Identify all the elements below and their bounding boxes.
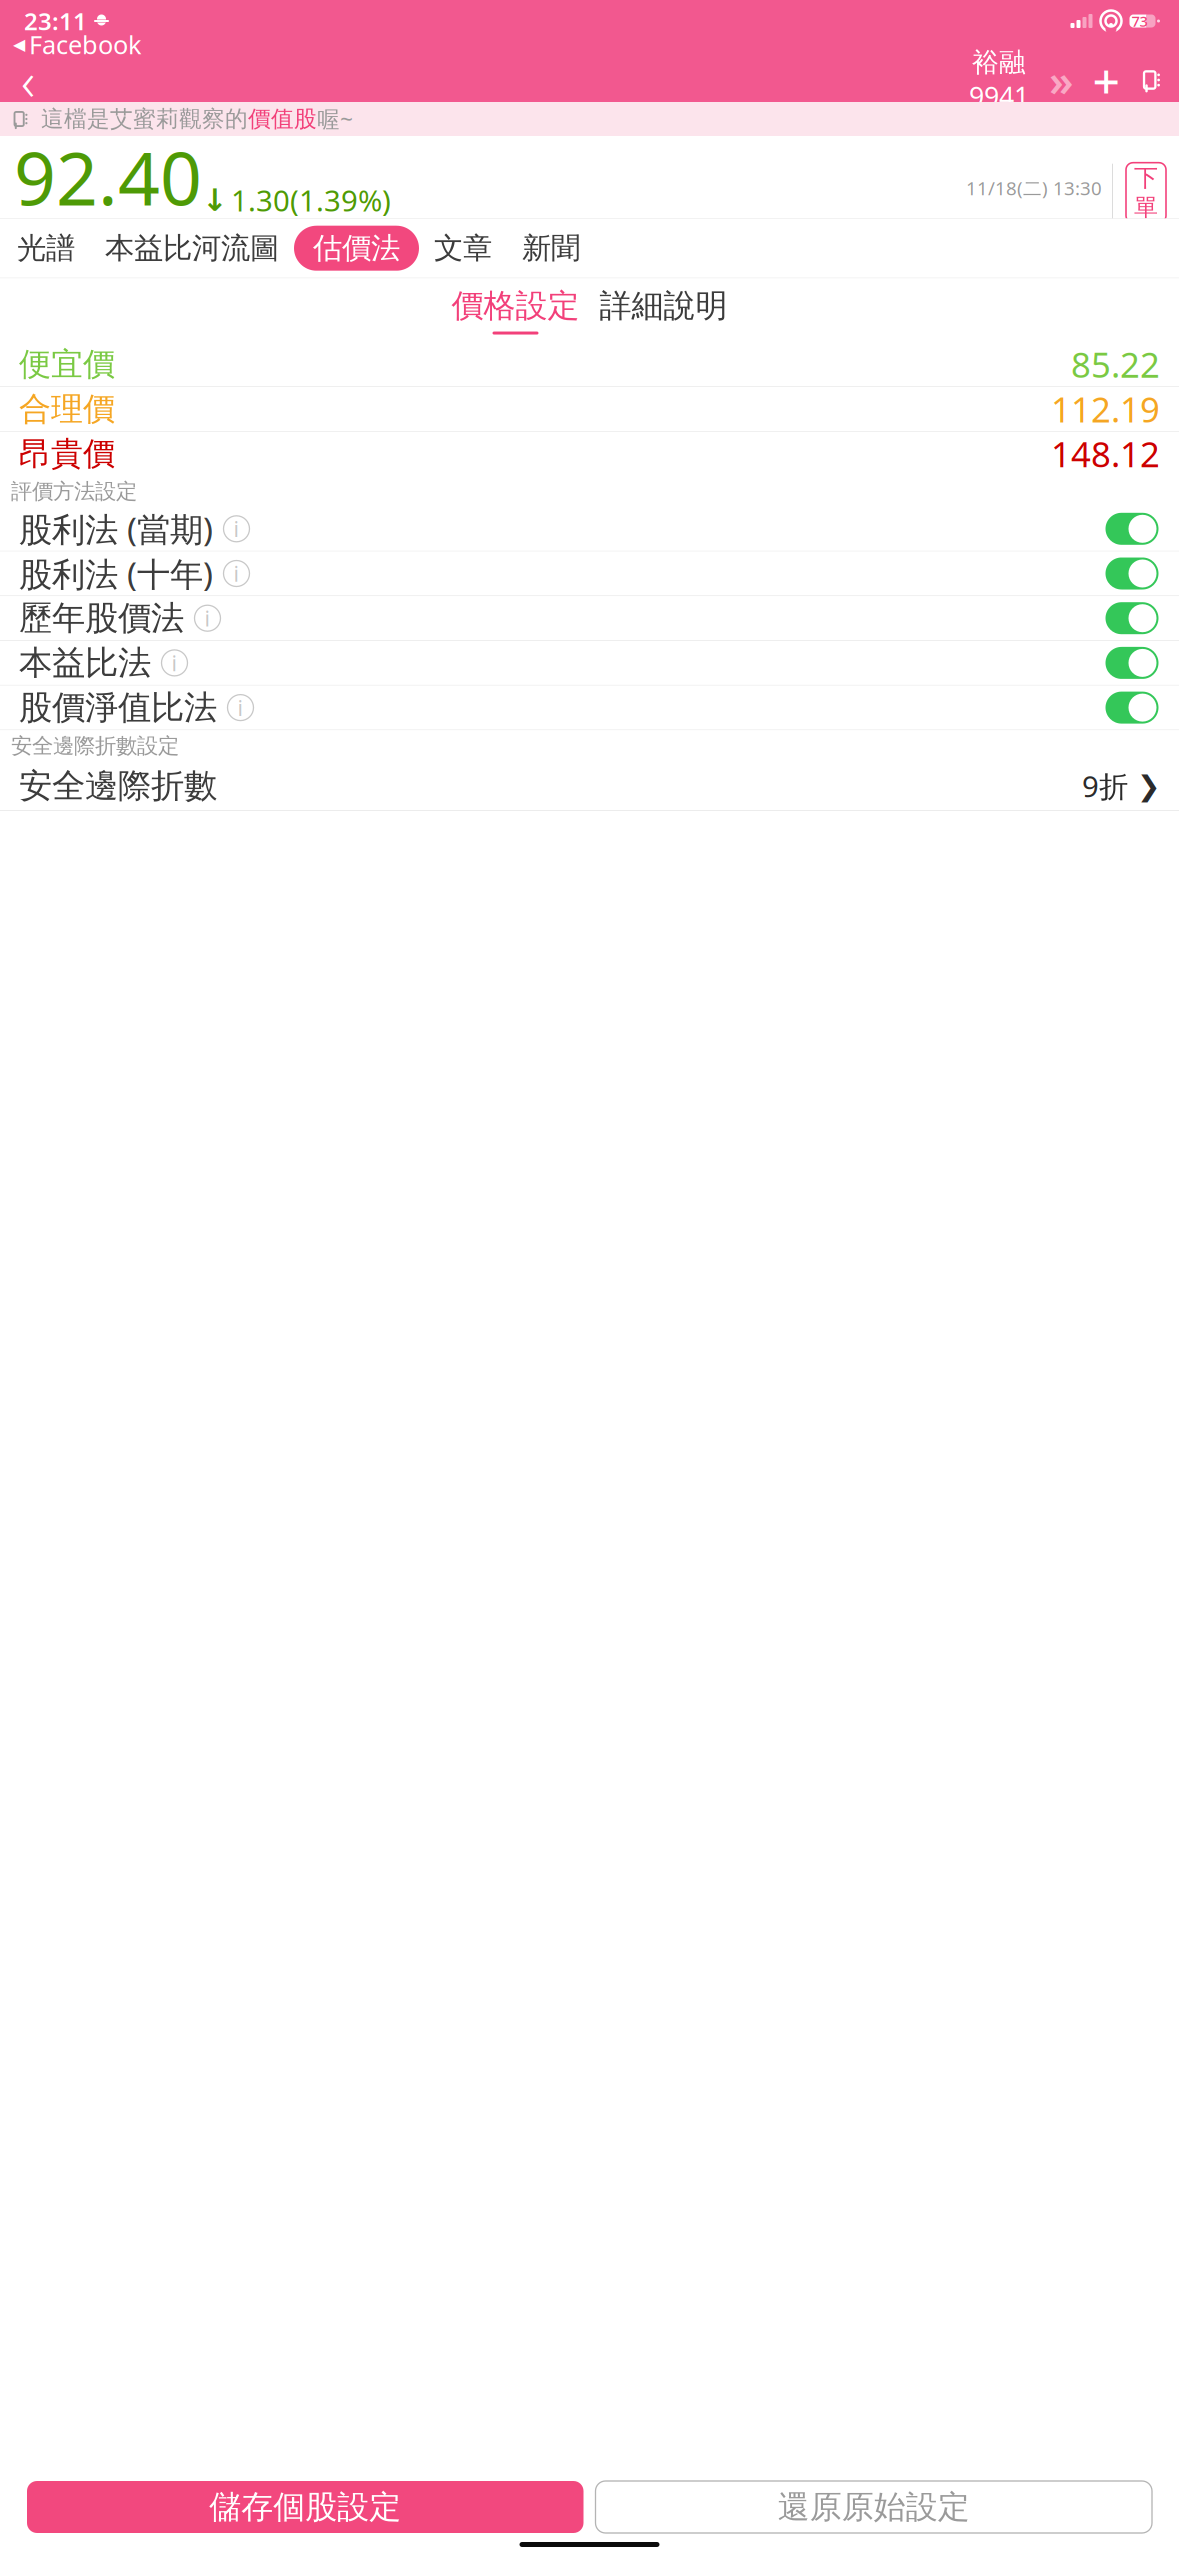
button[interactable]: Info about 本益比法 bbox=[161, 649, 188, 676]
button[interactable]: 便宜價 bbox=[0, 342, 1179, 386]
staticText: 23:11 bbox=[24, 5, 87, 37]
button[interactable]: Announcements bbox=[1129, 58, 1175, 102]
staticText: 9941 bbox=[969, 79, 1029, 114]
staticText: 歷年股價法 bbox=[19, 598, 184, 639]
staticText: 112.19 bbox=[1051, 386, 1160, 432]
button[interactable]: 價格設定 bbox=[445, 283, 585, 337]
staticText: 價值股 bbox=[248, 105, 317, 133]
staticText: i bbox=[233, 515, 239, 543]
staticText: 這檔是艾蜜莉觀察的 bbox=[41, 105, 248, 133]
staticText: 合理價 bbox=[19, 389, 115, 429]
button[interactable]: 新聞 bbox=[507, 226, 595, 271]
button[interactable]: 本益比法, on bbox=[1104, 641, 1160, 685]
button[interactable]: 股利法 (十年), on bbox=[1104, 551, 1160, 595]
button[interactable]: 股利法 (當期), on bbox=[1104, 507, 1160, 551]
staticText: 詳細說明 bbox=[599, 286, 727, 325]
button[interactable]: 光譜 bbox=[2, 226, 90, 271]
staticText: 148.12 bbox=[1051, 431, 1160, 477]
staticText: 1.30(1.39%) bbox=[231, 181, 391, 220]
staticText: ◀ bbox=[13, 35, 25, 54]
button[interactable]: Info about 歷年股價法 bbox=[194, 605, 221, 632]
staticText: 92.40 bbox=[14, 128, 202, 226]
staticText: 下 bbox=[1134, 163, 1158, 193]
staticText: 還原原始設定 bbox=[778, 2487, 970, 2527]
staticText: 安全邊際折數 bbox=[19, 765, 217, 806]
staticText: 文章 bbox=[434, 230, 492, 266]
button[interactable]: 合理價 bbox=[0, 387, 1179, 431]
staticText: ↓ bbox=[202, 183, 228, 218]
staticText: 安全邊際折數設定 bbox=[11, 733, 179, 759]
staticText: 本益比河流圖 bbox=[105, 230, 279, 266]
staticText: 73 bbox=[1131, 11, 1147, 31]
staticText: 價格設定 bbox=[451, 286, 579, 325]
staticText: 85.22 bbox=[1071, 341, 1160, 387]
staticText: 單 bbox=[1134, 193, 1158, 222]
staticText: » bbox=[1049, 52, 1073, 108]
staticText: i bbox=[204, 604, 210, 632]
staticText: 本益比法 bbox=[19, 642, 151, 683]
staticText: 股價淨值比法 bbox=[19, 687, 217, 728]
button[interactable]: 下 bbox=[1126, 163, 1166, 223]
staticText: 新聞 bbox=[522, 230, 580, 266]
staticText: ❯ bbox=[1137, 770, 1160, 802]
button[interactable]: 本益比河流圖 bbox=[90, 226, 294, 271]
button[interactable]: 安全邊際折數 bbox=[0, 761, 1179, 810]
staticText: 昂貴價 bbox=[19, 434, 115, 473]
staticText: i bbox=[171, 649, 177, 677]
staticText: 便宜價 bbox=[19, 345, 115, 384]
button[interactable]: Info about 股價淨值比法 bbox=[227, 694, 254, 721]
staticText: + bbox=[1092, 48, 1119, 112]
staticText: ‹ bbox=[21, 45, 35, 115]
button[interactable]: 詳細說明 bbox=[593, 283, 733, 337]
staticText: Facebook bbox=[29, 28, 142, 61]
staticText: i bbox=[237, 693, 243, 722]
staticText: 儲存個股設定 bbox=[209, 2487, 401, 2527]
button[interactable]: 文章 bbox=[419, 226, 507, 271]
button[interactable]: 儲存個股設定 bbox=[27, 2481, 583, 2533]
button[interactable]: 還原原始設定 bbox=[595, 2481, 1152, 2533]
button[interactable]: 估價法 bbox=[294, 226, 419, 271]
button[interactable]: Info about 股利法 (十年) bbox=[223, 560, 250, 587]
button[interactable]: 昂貴價 bbox=[0, 432, 1179, 476]
button[interactable]: 股價淨值比法, on bbox=[1104, 686, 1160, 730]
staticText: i bbox=[233, 559, 239, 588]
staticText: 股利法 (十年) bbox=[19, 551, 213, 596]
button[interactable]: 這檔是艾蜜莉觀察的 bbox=[0, 102, 1179, 136]
staticText: 9折 bbox=[1082, 766, 1128, 805]
button[interactable]: 歷年股價法, on bbox=[1104, 596, 1160, 640]
staticText: 評價方法設定 bbox=[11, 478, 137, 504]
button[interactable]: Add to watchlist bbox=[1083, 58, 1129, 102]
staticText: 裕融 bbox=[972, 46, 1026, 79]
staticText: 11/18(二) 13:30 bbox=[966, 176, 1102, 200]
button[interactable]: Info about 股利法 (當期) bbox=[223, 515, 250, 542]
staticText: 股利法 (當期) bbox=[19, 507, 213, 551]
staticText: 光譜 bbox=[17, 230, 75, 266]
button[interactable]: More tabs bbox=[1039, 58, 1083, 102]
button[interactable]: Back bbox=[0, 58, 56, 102]
staticText: 喔~ bbox=[317, 104, 353, 134]
staticText: 估價法 bbox=[313, 230, 400, 266]
